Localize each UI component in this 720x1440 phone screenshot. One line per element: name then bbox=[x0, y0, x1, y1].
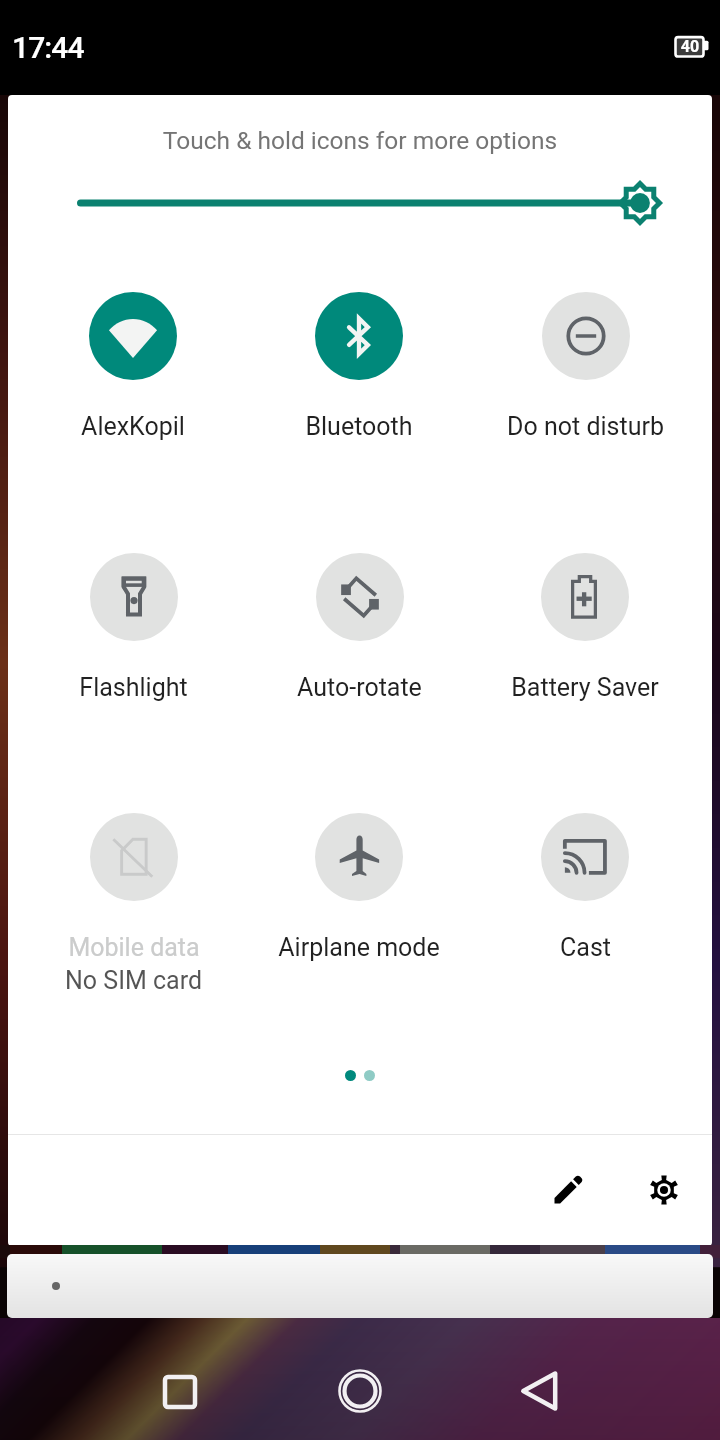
staticText: 40 bbox=[675, 37, 705, 56]
button[interactable]: Airplane mode bbox=[247, 813, 471, 993]
button[interactable]: Home bbox=[330, 1361, 390, 1421]
button[interactable]: AlexKopil bbox=[21, 292, 245, 472]
staticText: Touch & hold icons for more options bbox=[8, 126, 712, 155]
staticText: Bluetooth bbox=[305, 412, 413, 441]
staticText: Cast bbox=[560, 933, 611, 962]
button[interactable]: Cast bbox=[473, 813, 697, 993]
button[interactable]: Edit tiles bbox=[536, 1158, 600, 1222]
button[interactable]: Battery Saver bbox=[473, 553, 697, 733]
button[interactable]: Flashlight bbox=[21, 553, 245, 733]
button[interactable]: Bluetooth bbox=[247, 292, 471, 472]
staticText: AlexKopil bbox=[81, 412, 185, 441]
button[interactable]: Recent apps bbox=[150, 1362, 210, 1422]
staticText: 17:44 bbox=[12, 30, 84, 65]
button[interactable]: Settings bbox=[632, 1158, 696, 1222]
staticText: Flashlight bbox=[79, 673, 188, 702]
button[interactable]: Back bbox=[510, 1361, 570, 1421]
button[interactable]: Auto-rotate bbox=[247, 553, 471, 733]
staticText: Mobile data bbox=[68, 933, 200, 962]
button[interactable]: Search bbox=[7, 1254, 713, 1318]
button[interactable]: Mobile data bbox=[21, 813, 245, 993]
staticText: No SIM card bbox=[65, 966, 202, 993]
staticText: Battery Saver bbox=[511, 673, 659, 702]
button[interactable]: Do not disturb bbox=[473, 292, 697, 472]
staticText: Auto-rotate bbox=[297, 673, 422, 702]
staticText: Airplane mode bbox=[278, 933, 440, 962]
staticText: Do not disturb bbox=[507, 412, 664, 441]
